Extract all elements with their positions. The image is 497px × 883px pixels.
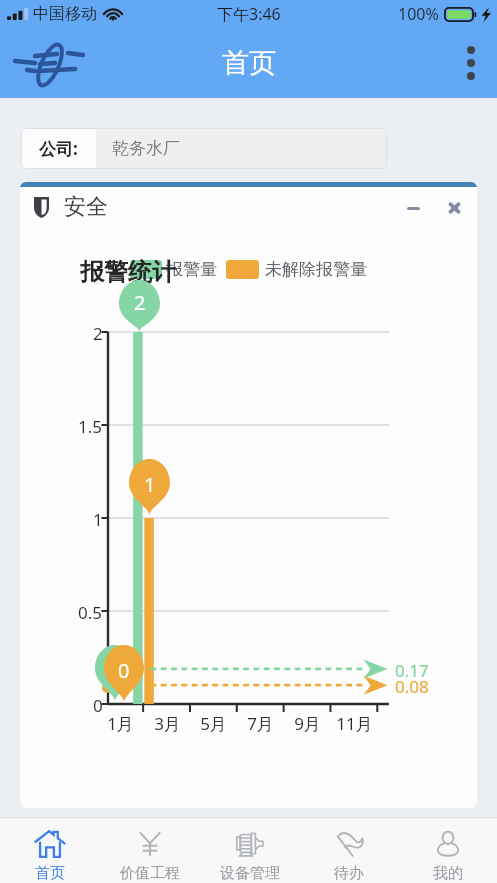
staticText: 我的 <box>433 864 463 883</box>
staticText: 1.5 <box>78 415 103 438</box>
button[interactable]: Minimize <box>400 197 427 220</box>
button[interactable]: 首页 <box>0 818 100 883</box>
button[interactable]: 我的 <box>398 818 497 883</box>
staticText: 设备管理 <box>220 864 280 883</box>
staticText: 下午3:46 <box>217 3 281 25</box>
staticText: 首页 <box>35 864 65 883</box>
staticText: 0.17 <box>395 659 429 682</box>
staticText: 100% <box>398 3 439 25</box>
staticText: 2 <box>93 322 103 345</box>
staticText: 乾务水厂 <box>112 138 180 159</box>
staticText: 11月 <box>336 712 373 735</box>
staticText: 安全 <box>64 193 108 221</box>
staticText: 9月 <box>294 712 321 735</box>
staticText: 0 <box>118 657 130 684</box>
staticText: 1月 <box>107 712 134 735</box>
staticText: 0.08 <box>395 675 429 698</box>
staticText: 报警量 <box>166 259 217 280</box>
staticText: 7月 <box>247 712 274 735</box>
staticText: 1 <box>93 508 103 531</box>
staticText: 2 <box>134 289 146 316</box>
staticText: 3月 <box>154 712 181 735</box>
button[interactable]: 价值工程 <box>100 818 200 883</box>
staticText: 0 <box>93 694 103 717</box>
button[interactable]: More options <box>459 42 483 84</box>
staticText: 待办 <box>334 864 364 883</box>
staticText: 未解除报警量 <box>265 259 367 280</box>
button[interactable]: 设备管理 <box>200 818 299 883</box>
staticText: 5月 <box>200 712 227 735</box>
staticText: 首页 <box>222 46 276 80</box>
staticText: 公司: <box>39 137 78 160</box>
staticText: 价值工程 <box>120 864 180 883</box>
button[interactable]: Close <box>442 196 467 220</box>
staticText: 0.5 <box>78 601 103 624</box>
staticText: 1 <box>144 471 156 498</box>
staticText: 中国移动 <box>33 4 97 24</box>
staticText: 报警统计 <box>80 257 176 287</box>
button[interactable]: 公司: <box>21 128 387 169</box>
button[interactable]: 待办 <box>299 818 398 883</box>
